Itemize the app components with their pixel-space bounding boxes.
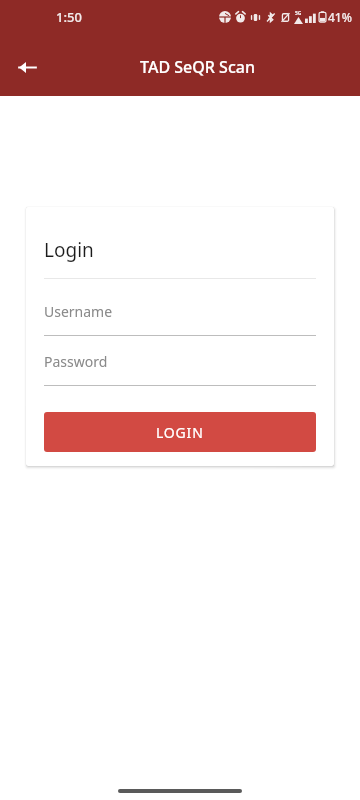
staticText: LOGIN xyxy=(156,423,204,442)
staticText: 41% xyxy=(328,9,352,25)
button[interactable]: Back xyxy=(9,49,45,85)
button[interactable]: LOGIN xyxy=(44,412,316,452)
staticText: 1:50 xyxy=(56,8,82,26)
staticText: Password xyxy=(44,352,108,371)
button[interactable]: Password xyxy=(44,352,316,386)
staticText: TAD SeQR Scan xyxy=(140,56,255,78)
button[interactable]: Username xyxy=(44,302,316,336)
staticText: Username xyxy=(44,302,113,321)
staticText: Login xyxy=(44,237,94,263)
staticText: 5G xyxy=(295,10,302,17)
